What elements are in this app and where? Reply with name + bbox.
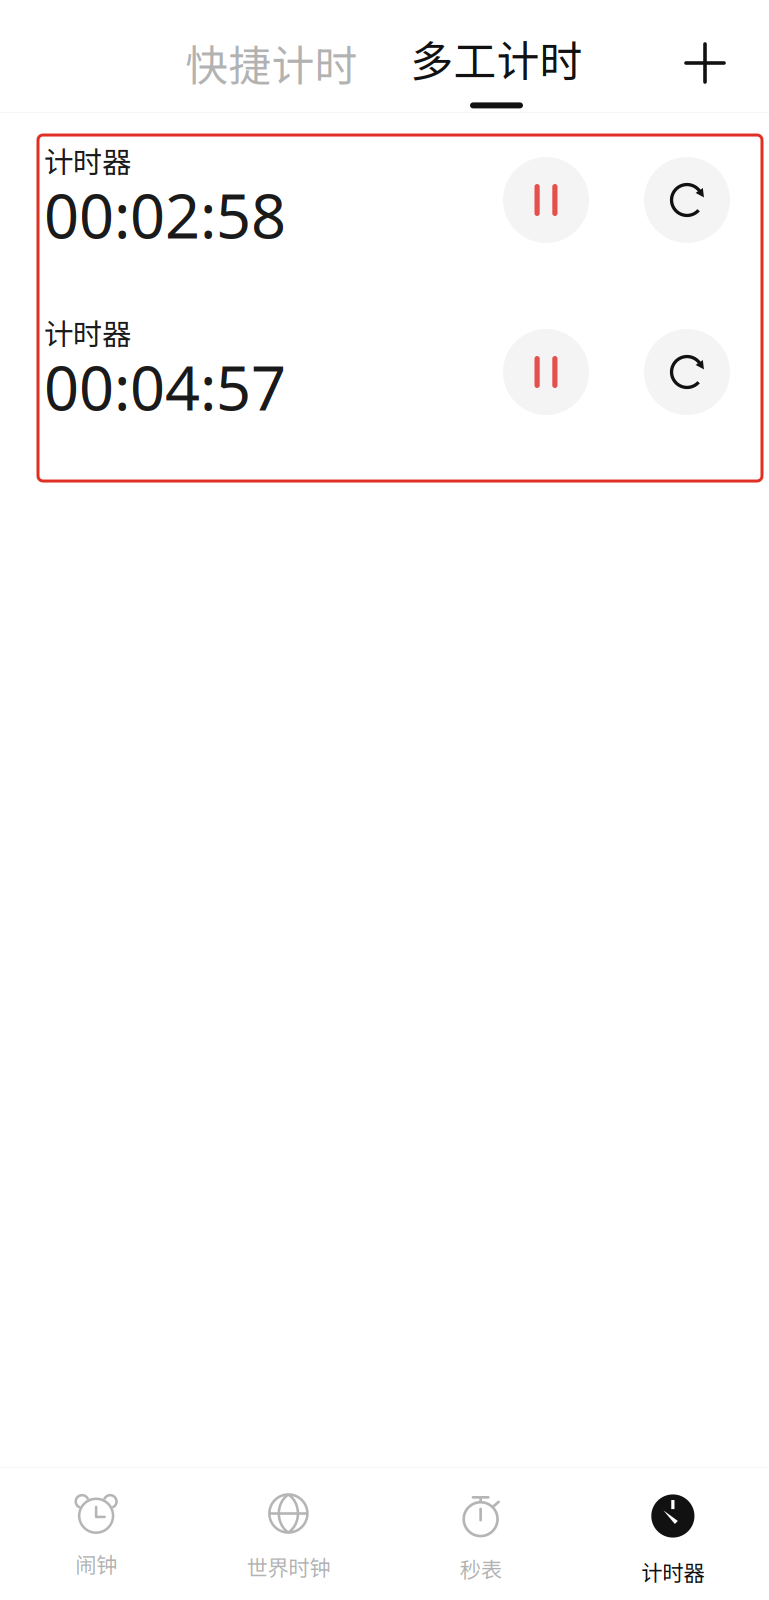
- staticText: 计时器: [44, 311, 131, 353]
- staticText: 计时器: [641, 1556, 704, 1587]
- staticText: 00:04:57: [44, 345, 286, 428]
- button[interactable]: 快捷计时: [185, 0, 358, 112]
- button[interactable]: 闹钟: [0, 1468, 192, 1600]
- staticText: 秒表: [460, 1553, 502, 1584]
- button[interactable]: 添加计时器: [663, 0, 747, 112]
- staticText: 闹钟: [75, 1548, 117, 1579]
- staticText: 00:02:58: [44, 173, 286, 256]
- button[interactable]: 多工计时: [410, 0, 583, 112]
- staticText: 快捷计时: [185, 32, 357, 94]
- button[interactable]: 暂停: [503, 329, 589, 415]
- button[interactable]: 重置: [644, 157, 730, 243]
- button[interactable]: 秒表: [384, 1468, 577, 1600]
- button[interactable]: 世界时钟: [192, 1468, 384, 1600]
- staticText: 多工计时: [410, 28, 582, 89]
- button[interactable]: 暂停: [503, 157, 589, 243]
- button[interactable]: 重置: [644, 329, 730, 415]
- button[interactable]: 计时器: [577, 1468, 769, 1600]
- staticText: 计时器: [44, 139, 131, 181]
- staticText: 世界时钟: [246, 1551, 330, 1582]
